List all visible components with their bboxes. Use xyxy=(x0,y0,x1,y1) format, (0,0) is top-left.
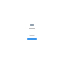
button[interactable] xyxy=(27,38,37,40)
